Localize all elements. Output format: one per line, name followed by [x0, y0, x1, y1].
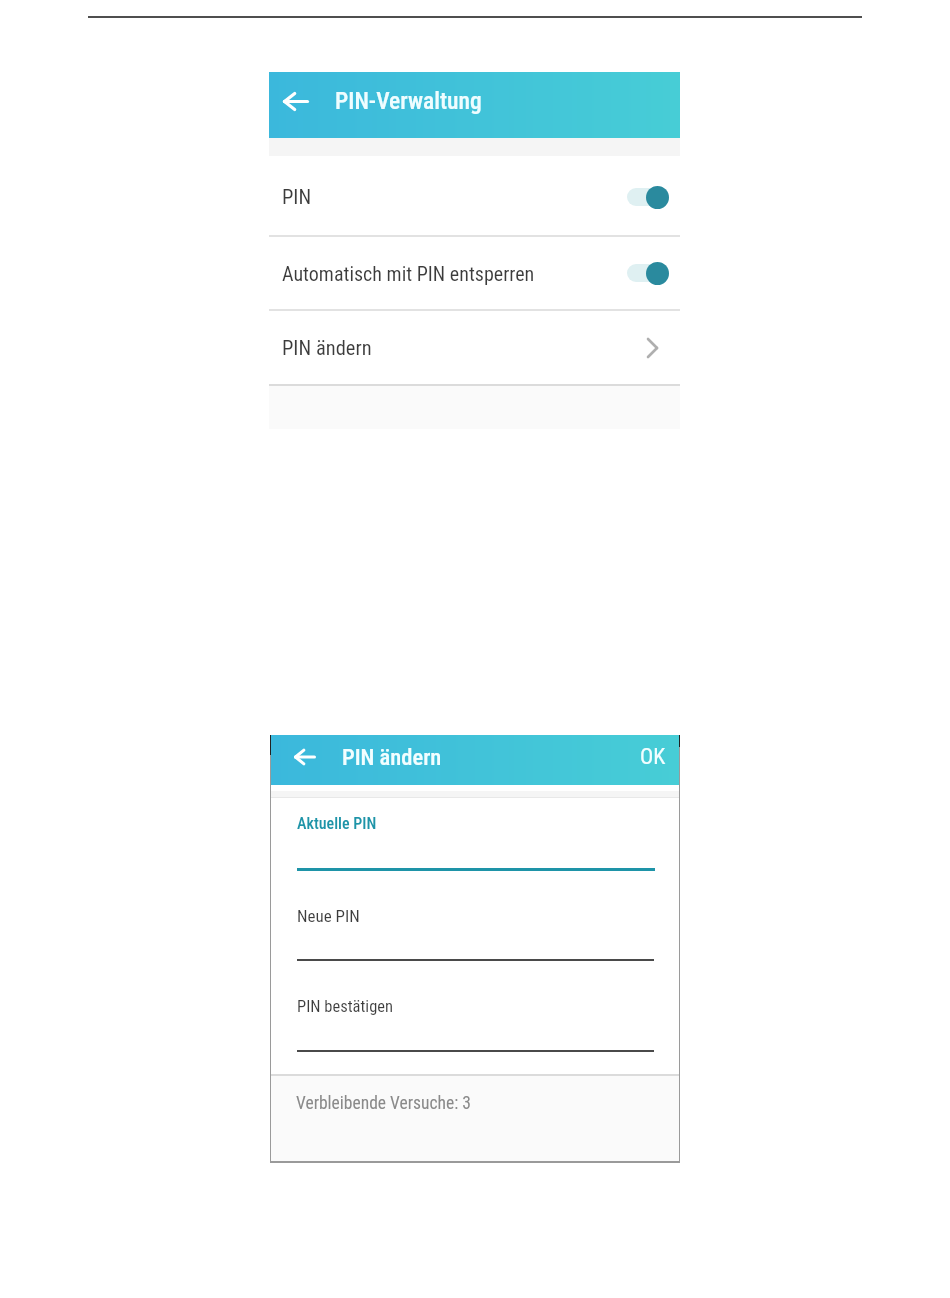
button[interactable] [627, 260, 669, 286]
button[interactable]: OK [640, 744, 666, 770]
staticText: PIN ändern [342, 744, 442, 770]
button[interactable]: PIN ändern [269, 311, 680, 384]
button[interactable] [283, 91, 309, 112]
button[interactable] [627, 184, 669, 210]
staticText: PIN [282, 185, 627, 209]
button[interactable]: Automatisch mit PIN entsperren [269, 237, 680, 309]
staticText: OK [640, 744, 666, 770]
staticText: PIN bestätigen [297, 997, 393, 1016]
button[interactable] [294, 748, 316, 766]
button[interactable]: PIN [269, 159, 680, 235]
staticText: Aktuelle PIN [297, 814, 377, 833]
staticText: Verbleibende Versuche: 3 [296, 1093, 471, 1114]
staticText: PIN ändern [282, 336, 647, 360]
staticText: PIN-Verwaltung [335, 87, 482, 115]
staticText: Neue PIN [297, 906, 360, 926]
staticText: Automatisch mit PIN entsperren [282, 262, 627, 285]
